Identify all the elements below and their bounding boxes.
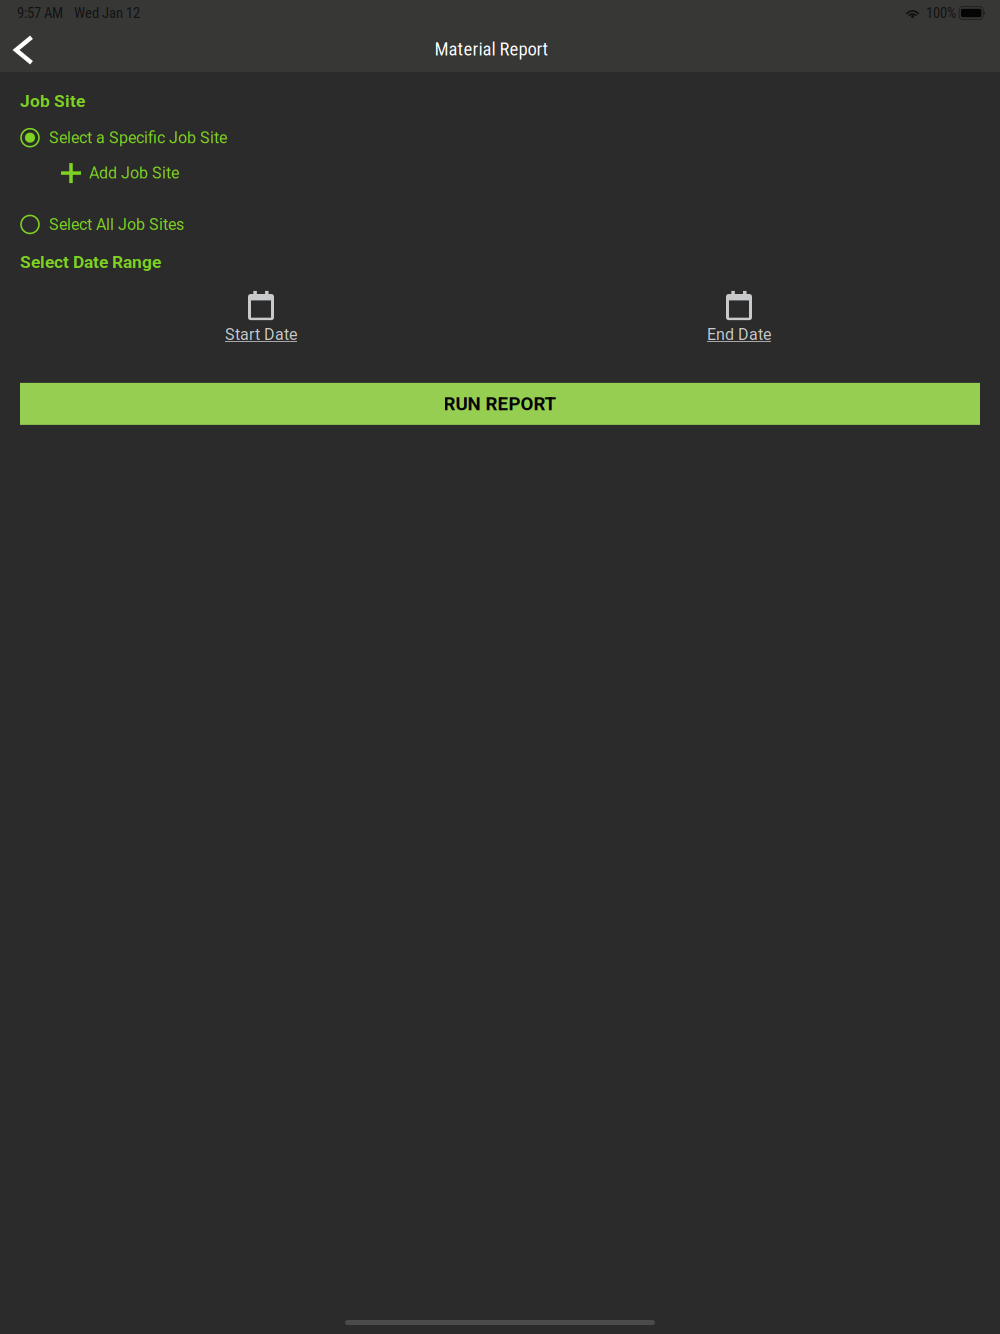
staticText: Start Date bbox=[225, 325, 297, 344]
staticText: Select a Specific Job Site bbox=[49, 128, 227, 147]
staticText: Select All Job Sites bbox=[49, 215, 184, 234]
button[interactable]: RUN REPORT bbox=[20, 383, 980, 425]
staticText: Material Report bbox=[434, 38, 548, 60]
staticText: Wed Jan 12 bbox=[74, 4, 140, 22]
staticText: RUN REPORT bbox=[443, 393, 556, 415]
button[interactable]: Select a Specific Job Site bbox=[0, 111, 1000, 147]
button[interactable]: Add Job Site bbox=[0, 147, 1000, 183]
button[interactable]: End Date bbox=[707, 290, 771, 344]
staticText: 100% bbox=[926, 4, 956, 22]
button[interactable]: Start Date bbox=[225, 290, 297, 344]
staticText: 9:57 AM bbox=[17, 4, 63, 22]
staticText: Select Date Range bbox=[20, 252, 161, 272]
staticText: End Date bbox=[707, 325, 771, 344]
button[interactable]: Back bbox=[0, 26, 53, 72]
staticText: Job Site bbox=[20, 91, 85, 111]
staticText: Add Job Site bbox=[89, 164, 179, 182]
button[interactable]: Select All Job Sites bbox=[0, 183, 1000, 234]
